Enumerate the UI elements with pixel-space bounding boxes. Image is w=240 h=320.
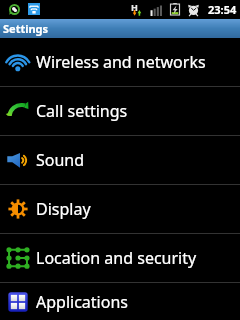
staticText: 23:54 xyxy=(208,2,237,17)
staticText: Call settings xyxy=(36,100,128,122)
button[interactable]: Location and security xyxy=(0,234,240,283)
staticText: Settings xyxy=(3,21,49,36)
button[interactable]: Display xyxy=(0,185,240,234)
button[interactable]: Call settings xyxy=(0,87,240,136)
staticText: Location and security xyxy=(36,247,197,269)
staticText: Sound xyxy=(36,149,85,171)
button[interactable]: Wireless and networks xyxy=(0,38,240,87)
staticText: Applications xyxy=(36,291,128,313)
staticText: Wireless and networks xyxy=(36,51,206,73)
staticText: H xyxy=(131,1,138,13)
button[interactable]: Applications xyxy=(0,283,240,320)
button[interactable]: Sound xyxy=(0,136,240,185)
staticText: Display xyxy=(36,198,91,220)
